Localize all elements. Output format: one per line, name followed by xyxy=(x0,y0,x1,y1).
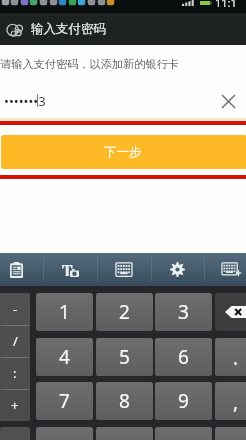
staticText: T xyxy=(62,260,73,276)
button[interactable]: 8 xyxy=(96,382,153,420)
button[interactable]: . xyxy=(215,338,246,376)
staticText: 5 xyxy=(119,344,130,370)
staticText: : xyxy=(13,364,17,382)
button[interactable]: App logo xyxy=(5,20,24,39)
button[interactable]: 9 xyxy=(155,382,212,420)
button[interactable]: 6 xyxy=(155,338,212,376)
staticText: 1 xyxy=(59,299,70,325)
button[interactable]: Keyboard xyxy=(98,253,150,286)
staticText: - xyxy=(13,300,18,318)
button[interactable]: Settings xyxy=(151,253,203,286)
button[interactable]: 2 xyxy=(96,293,153,331)
staticText: 4 xyxy=(59,344,70,370)
staticText: 6 xyxy=(178,344,189,370)
button[interactable]: Add input method xyxy=(205,253,246,286)
staticText: . xyxy=(233,345,239,371)
staticText: 9 xyxy=(178,388,189,414)
button[interactable]: Text recognition xyxy=(44,253,96,286)
button[interactable]: 下一步 xyxy=(1,135,246,169)
staticText: 2 xyxy=(119,299,130,325)
staticText: 下一步 xyxy=(104,144,142,160)
button[interactable]: Backspace xyxy=(215,293,246,331)
button[interactable]: + xyxy=(0,389,30,421)
button[interactable]: / xyxy=(0,325,30,357)
staticText: / xyxy=(13,332,18,350)
staticText: 7 xyxy=(59,388,70,414)
button[interactable]: , xyxy=(215,382,246,420)
staticText: 3 xyxy=(178,299,189,325)
button[interactable]: 4 xyxy=(36,338,93,376)
button[interactable]: Clipboard xyxy=(0,253,42,286)
button[interactable]: 5 xyxy=(96,338,153,376)
button[interactable]: - xyxy=(0,293,30,325)
staticText: , xyxy=(233,389,239,415)
button[interactable]: : xyxy=(0,357,30,389)
staticText: + xyxy=(11,396,19,414)
staticText: 输入支付密码 xyxy=(31,21,106,37)
staticText: 8 xyxy=(119,388,130,414)
staticText: 请输入支付密码，以添加新的银行卡 xyxy=(0,57,179,71)
staticText: 11:1 xyxy=(215,0,237,8)
button[interactable]: Clear xyxy=(216,90,240,112)
staticText: •••••••3 xyxy=(4,92,46,110)
button[interactable]: 3 xyxy=(155,293,212,331)
button[interactable]: 7 xyxy=(36,382,93,420)
button[interactable]: 1 xyxy=(36,293,93,331)
